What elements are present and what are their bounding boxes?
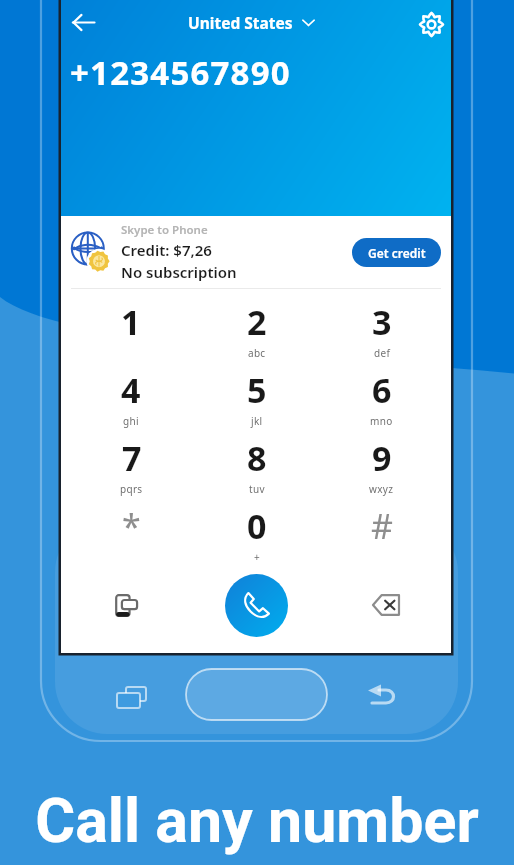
button[interactable]: 8 [194, 425, 319, 493]
staticText: Credit: $7,26 [121, 240, 212, 260]
staticText: tuv [249, 482, 265, 496]
staticText: +1234567890 [70, 50, 291, 95]
staticText: 6 [372, 367, 392, 413]
staticText: 7 [122, 435, 142, 481]
staticText: pqrs [120, 482, 143, 496]
button[interactable]: Call [225, 574, 288, 637]
staticText: + [254, 550, 261, 564]
staticText: 0 [247, 503, 267, 549]
staticText: abc [248, 346, 266, 360]
staticText: No subscription [121, 262, 237, 282]
button[interactable]: 6 [319, 357, 444, 425]
button[interactable]: 7 [68, 425, 194, 493]
button[interactable]: 0 [194, 493, 319, 561]
button[interactable]: # [319, 493, 444, 561]
staticText: 8 [247, 435, 267, 481]
button[interactable]: 5 [194, 357, 319, 425]
button[interactable]: Skype to Phone [61, 216, 451, 288]
button[interactable]: Settings [406, 0, 451, 45]
staticText: def [374, 346, 391, 360]
staticText: United States [188, 12, 293, 33]
staticText: 1 [121, 299, 141, 345]
staticText: 9 [372, 435, 392, 481]
button[interactable]: 1 [68, 289, 194, 357]
button[interactable]: Contacts [61, 561, 191, 649]
staticText: mno [370, 414, 393, 428]
staticText: wxyz [369, 482, 394, 496]
staticText: 4 [121, 367, 141, 413]
staticText: 3 [372, 299, 392, 345]
staticText: 5 [247, 367, 267, 413]
button[interactable]: * [68, 493, 194, 561]
staticText: Skype to Phone [121, 222, 208, 238]
button[interactable]: 3 [319, 289, 444, 357]
staticText: ghi [123, 414, 139, 428]
staticText: jkl [251, 414, 263, 428]
staticText: * [122, 503, 141, 549]
button[interactable]: 4 [68, 357, 194, 425]
button[interactable]: Back [61, 0, 106, 45]
staticText: Get credit [368, 245, 426, 261]
button[interactable]: United States [188, 12, 315, 33]
button[interactable]: 9 [319, 425, 444, 493]
staticText: Call any number [35, 785, 479, 856]
staticText: # [371, 503, 393, 549]
button[interactable]: Backspace [321, 561, 451, 649]
staticText: 2 [247, 299, 267, 345]
button[interactable]: 2 [194, 289, 319, 357]
button[interactable]: Get credit [352, 238, 441, 267]
